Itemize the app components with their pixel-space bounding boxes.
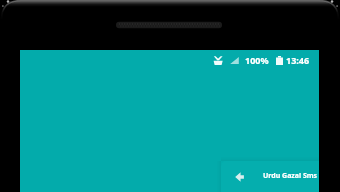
other: Back [235, 172, 244, 182]
button[interactable]: Back [221, 161, 319, 192]
staticText: 13:46 [286, 54, 310, 66]
staticText: 100% [245, 54, 269, 66]
staticText: Urdu Gazal Sms [263, 171, 318, 181]
